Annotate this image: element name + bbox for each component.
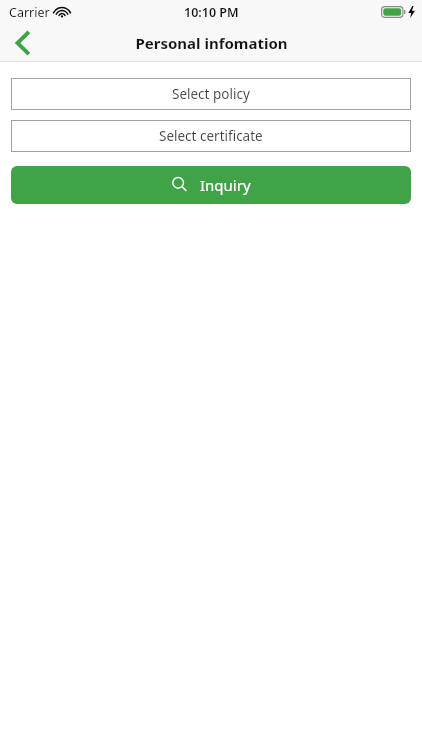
staticText: Inquiry [200, 175, 251, 195]
button[interactable]: Inquiry [11, 166, 411, 204]
button[interactable]: Select certificate [11, 120, 411, 152]
staticText: Select policy [172, 85, 250, 103]
staticText: Select certificate [159, 127, 263, 145]
button[interactable]: Select policy [11, 78, 411, 110]
staticText: Carrier [9, 4, 50, 21]
button[interactable]: Back [0, 24, 44, 62]
staticText: Personal infomation [135, 33, 288, 53]
staticText: 10:10 PM [184, 4, 239, 21]
